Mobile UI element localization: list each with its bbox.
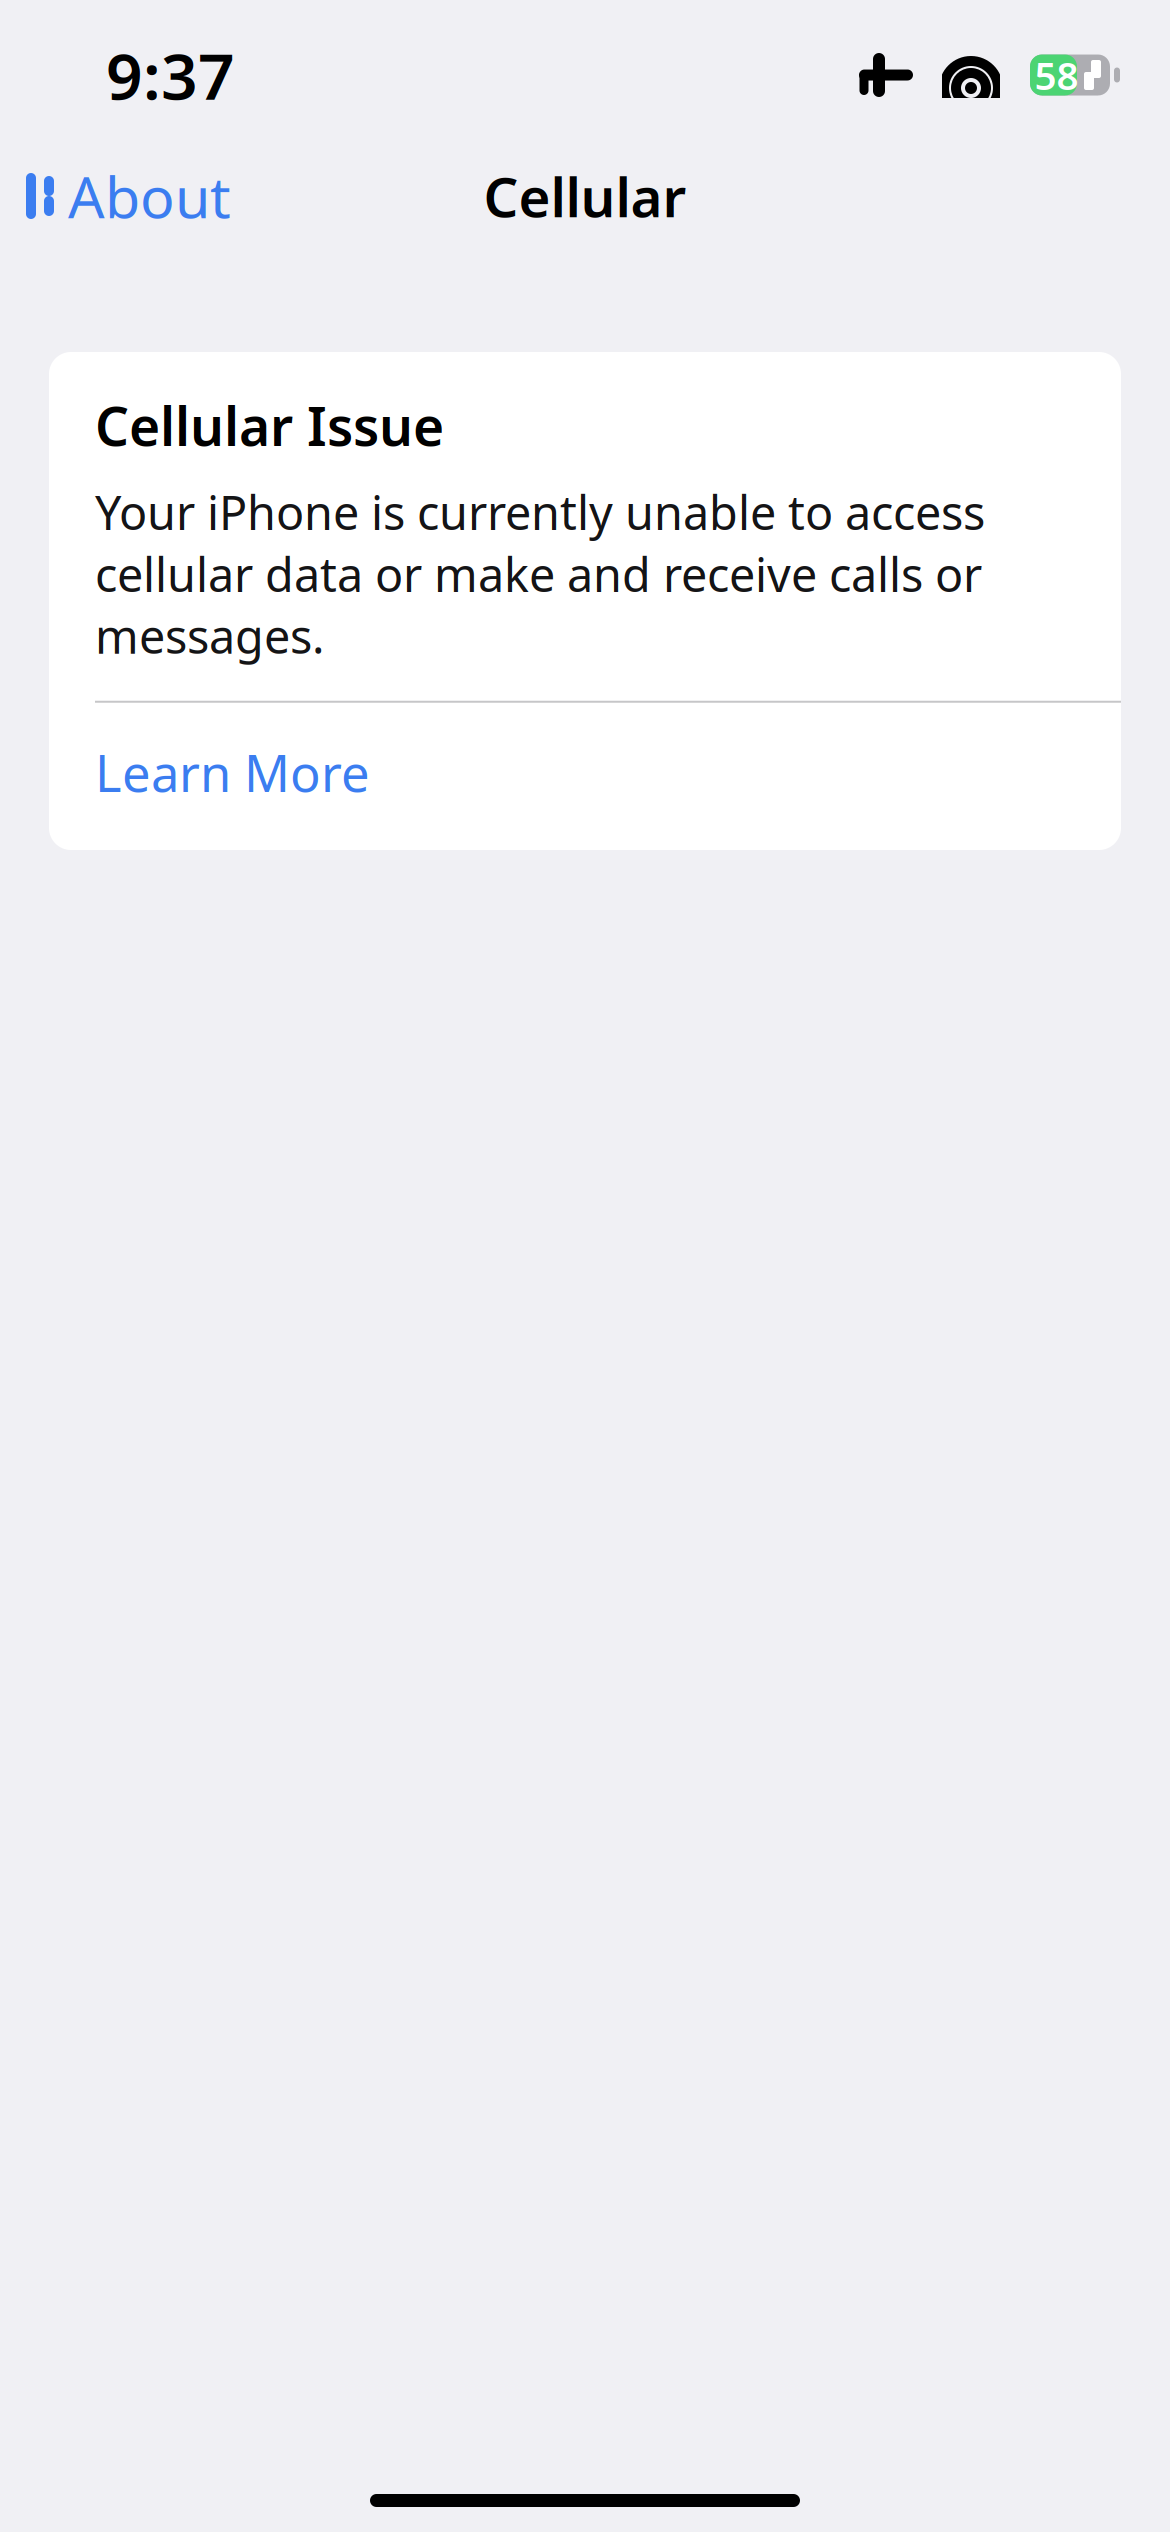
button[interactable]: About (0, 146, 231, 246)
staticText: 9:37 (106, 32, 235, 117)
staticText: Cellular Issue (95, 390, 444, 461)
staticText: Learn More (95, 739, 370, 806)
staticText: Your iPhone is currently unable to acces… (95, 481, 985, 667)
staticText: Cellular (483, 160, 686, 232)
button[interactable]: Learn More (49, 703, 1121, 850)
staticText: 58 (1034, 49, 1078, 101)
staticText: About (68, 158, 231, 234)
